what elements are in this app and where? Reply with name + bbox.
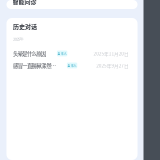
button[interactable]: 头晕是什么原因 xyxy=(13,48,129,58)
staticText: 智能问诊 xyxy=(12,0,36,6)
staticText: 2025年 xyxy=(13,36,24,42)
staticText: 历史对话 xyxy=(13,22,37,31)
staticText: 头晕是什么原因 xyxy=(13,50,46,57)
staticText: 本人 xyxy=(71,63,76,68)
staticText: 感冒一直擤鼻涕 然… xyxy=(13,62,56,69)
staticText: 2025年9月27日 xyxy=(96,62,129,69)
staticText: 本人 xyxy=(61,51,66,56)
staticText: 2025年11月20日 xyxy=(93,50,129,57)
button[interactable]: 感冒一直擤鼻涕 然… xyxy=(13,60,129,70)
